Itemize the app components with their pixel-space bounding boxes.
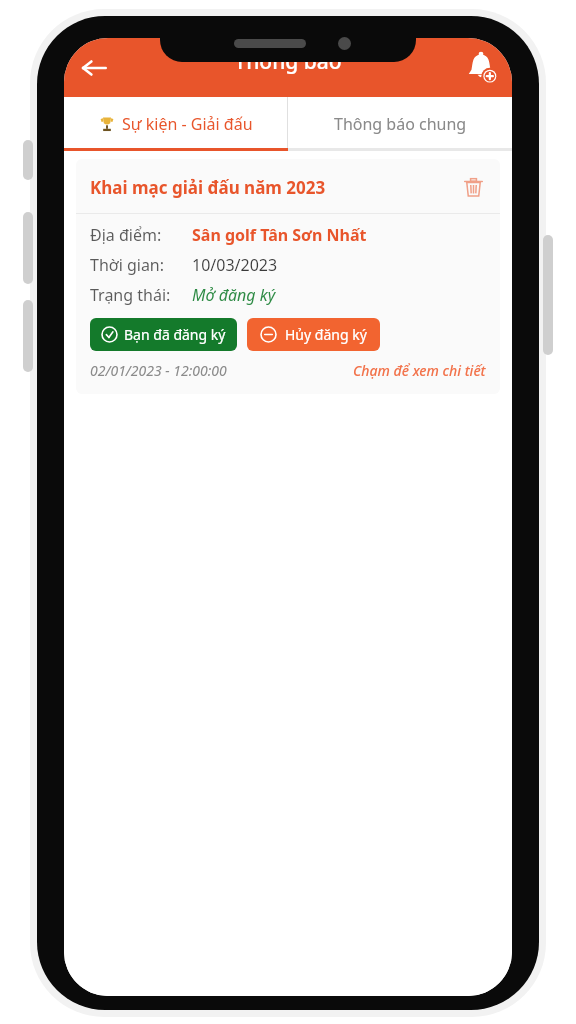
staticText: Sự kiện - Giải đấu	[122, 113, 253, 135]
staticText: Bạn đã đăng ký	[124, 325, 226, 344]
button[interactable]: Back	[70, 44, 118, 92]
button[interactable]: Bạn đã đăng ký	[90, 318, 237, 351]
button[interactable]: Thông báo chung	[288, 97, 512, 151]
staticText: 10/03/2023	[192, 254, 278, 276]
staticText: Địa điểm:	[90, 224, 162, 246]
staticText: Thời gian:	[90, 254, 165, 276]
staticText: Trạng thái:	[90, 284, 171, 306]
button[interactable]: Delete	[456, 170, 490, 204]
button[interactable]: Hủy đăng ký	[247, 318, 380, 351]
staticText: Sân golf Tân Sơn Nhất	[192, 224, 367, 246]
button[interactable]: Khai mạc giải đấu năm 2023	[76, 159, 500, 394]
staticText: Mở đăng ký	[192, 284, 276, 306]
staticText: Thông báo	[234, 47, 342, 76]
staticText: 02/01/2023 - 12:00:00	[90, 361, 227, 380]
button[interactable]: Add notification	[458, 45, 504, 91]
staticText: Thông báo chung	[334, 113, 467, 135]
staticText: Hủy đăng ký	[285, 325, 367, 344]
staticText: Chạm để xem chi tiết	[353, 361, 486, 380]
staticText: Khai mạc giải đấu năm 2023	[90, 176, 456, 199]
button[interactable]: Sự kiện - Giải đấu	[64, 97, 287, 151]
